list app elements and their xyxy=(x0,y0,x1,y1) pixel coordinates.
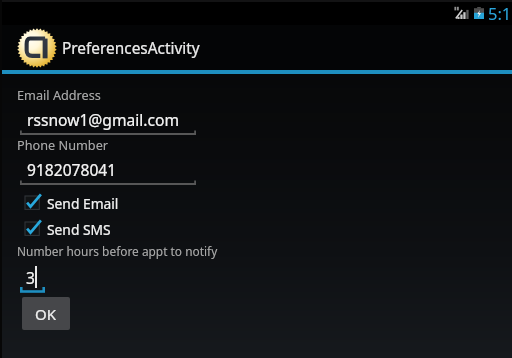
staticText: Phone Number xyxy=(17,136,109,153)
staticText: OK xyxy=(35,304,57,324)
staticText: Email Address xyxy=(17,86,101,103)
staticText: Send SMS xyxy=(47,220,111,239)
staticText: 5:15 xyxy=(488,2,512,24)
button[interactable]: Send Email xyxy=(24,193,119,213)
staticText: Send Email xyxy=(47,194,119,213)
staticText: PreferencesActivity xyxy=(62,38,200,59)
staticText: 3 xyxy=(26,267,35,288)
staticText: 9182078041 xyxy=(27,159,117,180)
button[interactable]: OK xyxy=(22,297,70,330)
button[interactable]: Send SMS xyxy=(24,219,111,239)
staticText: rssnow1@gmail.com xyxy=(27,109,179,130)
staticText: Number hours before appt to notify xyxy=(17,243,218,259)
